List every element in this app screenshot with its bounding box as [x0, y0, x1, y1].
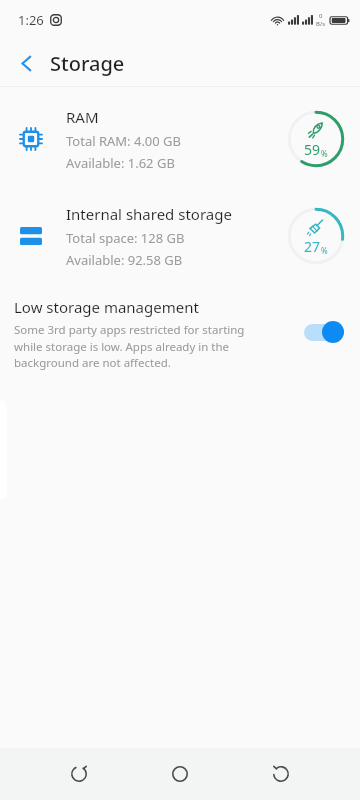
- staticText: %: [321, 148, 328, 159]
- staticText: RAM: [66, 107, 99, 127]
- button[interactable]: Back: [6, 43, 46, 83]
- staticText: Some 3rd party apps restricted for start…: [14, 322, 254, 370]
- button[interactable]: Internal shared storage: [0, 193, 360, 279]
- staticText: Available: 92.58 GB: [66, 251, 183, 269]
- button[interactable]: Low storage management toggle: [303, 320, 345, 344]
- button[interactable]: RAM: [0, 96, 360, 182]
- button[interactable]: Recent apps: [57, 752, 101, 796]
- button[interactable]: Home: [158, 752, 202, 796]
- staticText: Available: 1.62 GB: [66, 154, 175, 172]
- staticText: 59: [304, 140, 321, 159]
- staticText: B/s: [316, 20, 326, 28]
- staticText: %: [321, 245, 328, 256]
- staticText: 27: [304, 237, 321, 256]
- staticText: Total RAM: 4.00 GB: [66, 132, 182, 150]
- staticText: Low storage management: [14, 297, 199, 317]
- staticText: Storage: [50, 50, 125, 77]
- button[interactable]: Low storage management: [0, 293, 360, 378]
- staticText: 0: [319, 12, 323, 20]
- staticText: 1:26: [18, 11, 44, 29]
- staticText: Internal shared storage: [66, 204, 232, 224]
- staticText: Total space: 128 GB: [66, 229, 185, 247]
- button[interactable]: Back: [259, 752, 303, 796]
